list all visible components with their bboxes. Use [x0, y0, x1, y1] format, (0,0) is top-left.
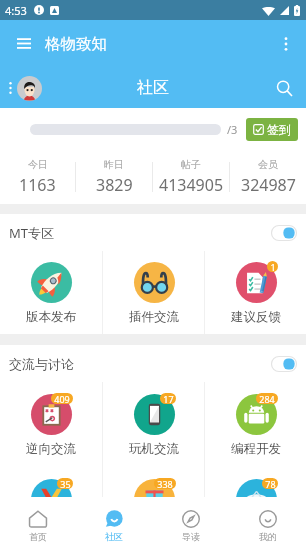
staticText: 17	[163, 393, 174, 404]
staticText: 社区	[105, 531, 123, 542]
staticText: 284	[259, 393, 275, 404]
button[interactable]: 284	[205, 382, 306, 467]
staticText: 版本发布	[26, 309, 76, 325]
button[interactable]: 导读	[152, 497, 229, 545]
button[interactable]: 1	[205, 251, 306, 334]
staticText: 338	[157, 478, 173, 489]
staticText: 逆向交流	[26, 441, 76, 457]
button[interactable]: 版本发布	[0, 251, 102, 334]
staticText: /3	[227, 122, 238, 137]
button[interactable]: 签到	[246, 118, 298, 141]
staticText: 编程开发	[231, 441, 281, 457]
button[interactable]: Toggle section	[271, 356, 297, 372]
staticText: 1	[270, 261, 276, 272]
staticText: 1163	[19, 174, 56, 196]
staticText: 签到	[267, 122, 291, 137]
staticText: 4134905	[159, 174, 224, 196]
button[interactable]: 338	[103, 467, 204, 497]
staticText: 交流与讨论	[9, 356, 74, 372]
button[interactable]: 35	[0, 467, 102, 497]
staticText: 会员	[258, 158, 278, 171]
button[interactable]: 首页	[0, 497, 76, 545]
button[interactable]: More options	[270, 28, 302, 60]
button[interactable]: 409	[0, 382, 102, 467]
button[interactable]: 我的	[229, 497, 306, 545]
button[interactable]: Toggle section	[271, 225, 297, 241]
button[interactable]: Profile	[17, 76, 42, 101]
staticText: 我的	[259, 531, 277, 542]
staticText: 建议反馈	[231, 309, 281, 325]
staticText: 3829	[96, 174, 133, 196]
staticText: 昨日	[104, 158, 124, 171]
staticText: 格物致知	[45, 34, 107, 54]
staticText: 导读	[182, 531, 200, 542]
staticText: 帖子	[181, 158, 201, 171]
staticText: 4:53	[5, 3, 27, 18]
staticText: 409	[54, 393, 70, 404]
staticText: 首页	[29, 531, 47, 542]
staticText: MT专区	[9, 224, 55, 242]
staticText: 玩机交流	[129, 441, 179, 457]
button[interactable]: Options	[3, 75, 17, 101]
staticText: 78	[265, 478, 276, 489]
staticText: 35	[60, 478, 71, 489]
button[interactable]: 插件交流	[103, 251, 204, 334]
button[interactable]: 78	[205, 467, 306, 497]
staticText: 324987	[241, 174, 296, 196]
button[interactable]: Search	[268, 72, 300, 104]
staticText: 社区	[137, 78, 169, 98]
button[interactable]: 17	[103, 382, 204, 467]
button[interactable]: 社区	[76, 497, 152, 545]
button[interactable]: Menu	[6, 26, 41, 61]
staticText: 插件交流	[129, 309, 179, 325]
staticText: 今日	[28, 158, 48, 171]
